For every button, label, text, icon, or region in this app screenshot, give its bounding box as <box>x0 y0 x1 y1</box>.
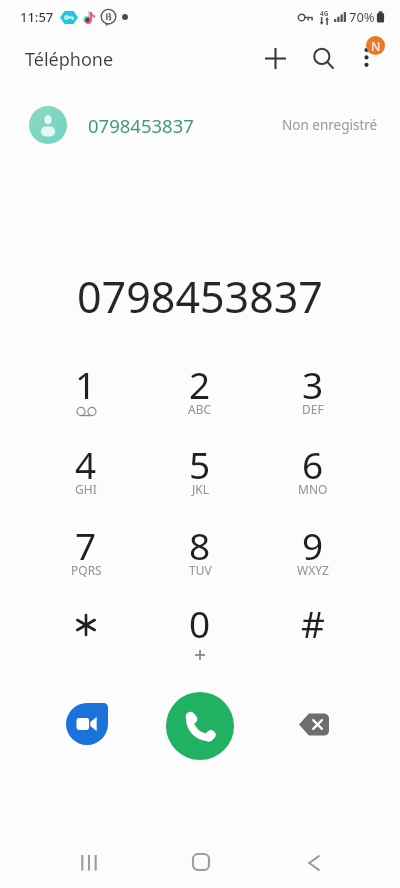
staticText: 0798453837 <box>77 267 323 326</box>
button[interactable]: 3 <box>266 351 360 431</box>
staticText: 8 <box>189 520 211 570</box>
staticText: Non enregistré <box>282 116 378 134</box>
staticText: PQRS <box>71 562 102 578</box>
button[interactable]: 0 <box>153 590 247 670</box>
staticText: 4 <box>75 439 97 489</box>
staticText: ABC <box>188 401 212 417</box>
button[interactable]: 2 <box>153 351 247 431</box>
staticText: JKL <box>192 481 209 497</box>
staticText: 7 <box>75 520 97 570</box>
staticText: 3 <box>302 359 324 409</box>
button[interactable]: More options <box>345 34 393 82</box>
button[interactable]: 9 <box>266 512 360 592</box>
staticText: TUV <box>189 562 212 578</box>
button[interactable]: 4 <box>39 431 133 511</box>
staticText: 5 <box>189 439 211 489</box>
staticText: 4G <box>320 9 329 18</box>
staticText: # <box>301 598 325 648</box>
staticText: 0 <box>189 598 211 648</box>
staticText: MNO <box>298 481 328 497</box>
staticText: DEF <box>302 401 324 417</box>
button[interactable]: 5 <box>153 431 247 511</box>
staticText: 2 <box>189 359 211 409</box>
button[interactable]: 1 <box>39 351 133 431</box>
button[interactable]: 8 <box>153 512 247 592</box>
button[interactable]: 6 <box>266 431 360 511</box>
staticText: 11:57 <box>20 8 54 26</box>
button[interactable]: Backspace <box>292 702 336 746</box>
staticText: N <box>371 38 381 54</box>
button[interactable]: pound <box>266 590 360 670</box>
staticText: WXYZ <box>297 562 329 578</box>
button[interactable]: Recent apps <box>65 839 113 887</box>
staticText: 9 <box>302 520 324 570</box>
staticText: 6 <box>302 439 324 489</box>
staticText: Téléphone <box>25 47 114 72</box>
button[interactable]: 7 <box>39 512 133 592</box>
button[interactable]: Search <box>301 36 345 80</box>
button[interactable]: 0798453837 <box>0 97 400 153</box>
button[interactable]: Call <box>166 692 234 760</box>
staticText: GHI <box>75 481 97 497</box>
staticText: 0798453837 <box>88 113 194 138</box>
button[interactable]: Back <box>290 839 338 887</box>
button[interactable]: Home <box>177 838 225 886</box>
button[interactable]: star <box>39 590 133 670</box>
button[interactable]: Video call <box>65 702 109 746</box>
staticText: 70% <box>349 8 375 26</box>
button[interactable]: Add contact <box>253 36 297 80</box>
staticText: 1 <box>75 359 97 409</box>
